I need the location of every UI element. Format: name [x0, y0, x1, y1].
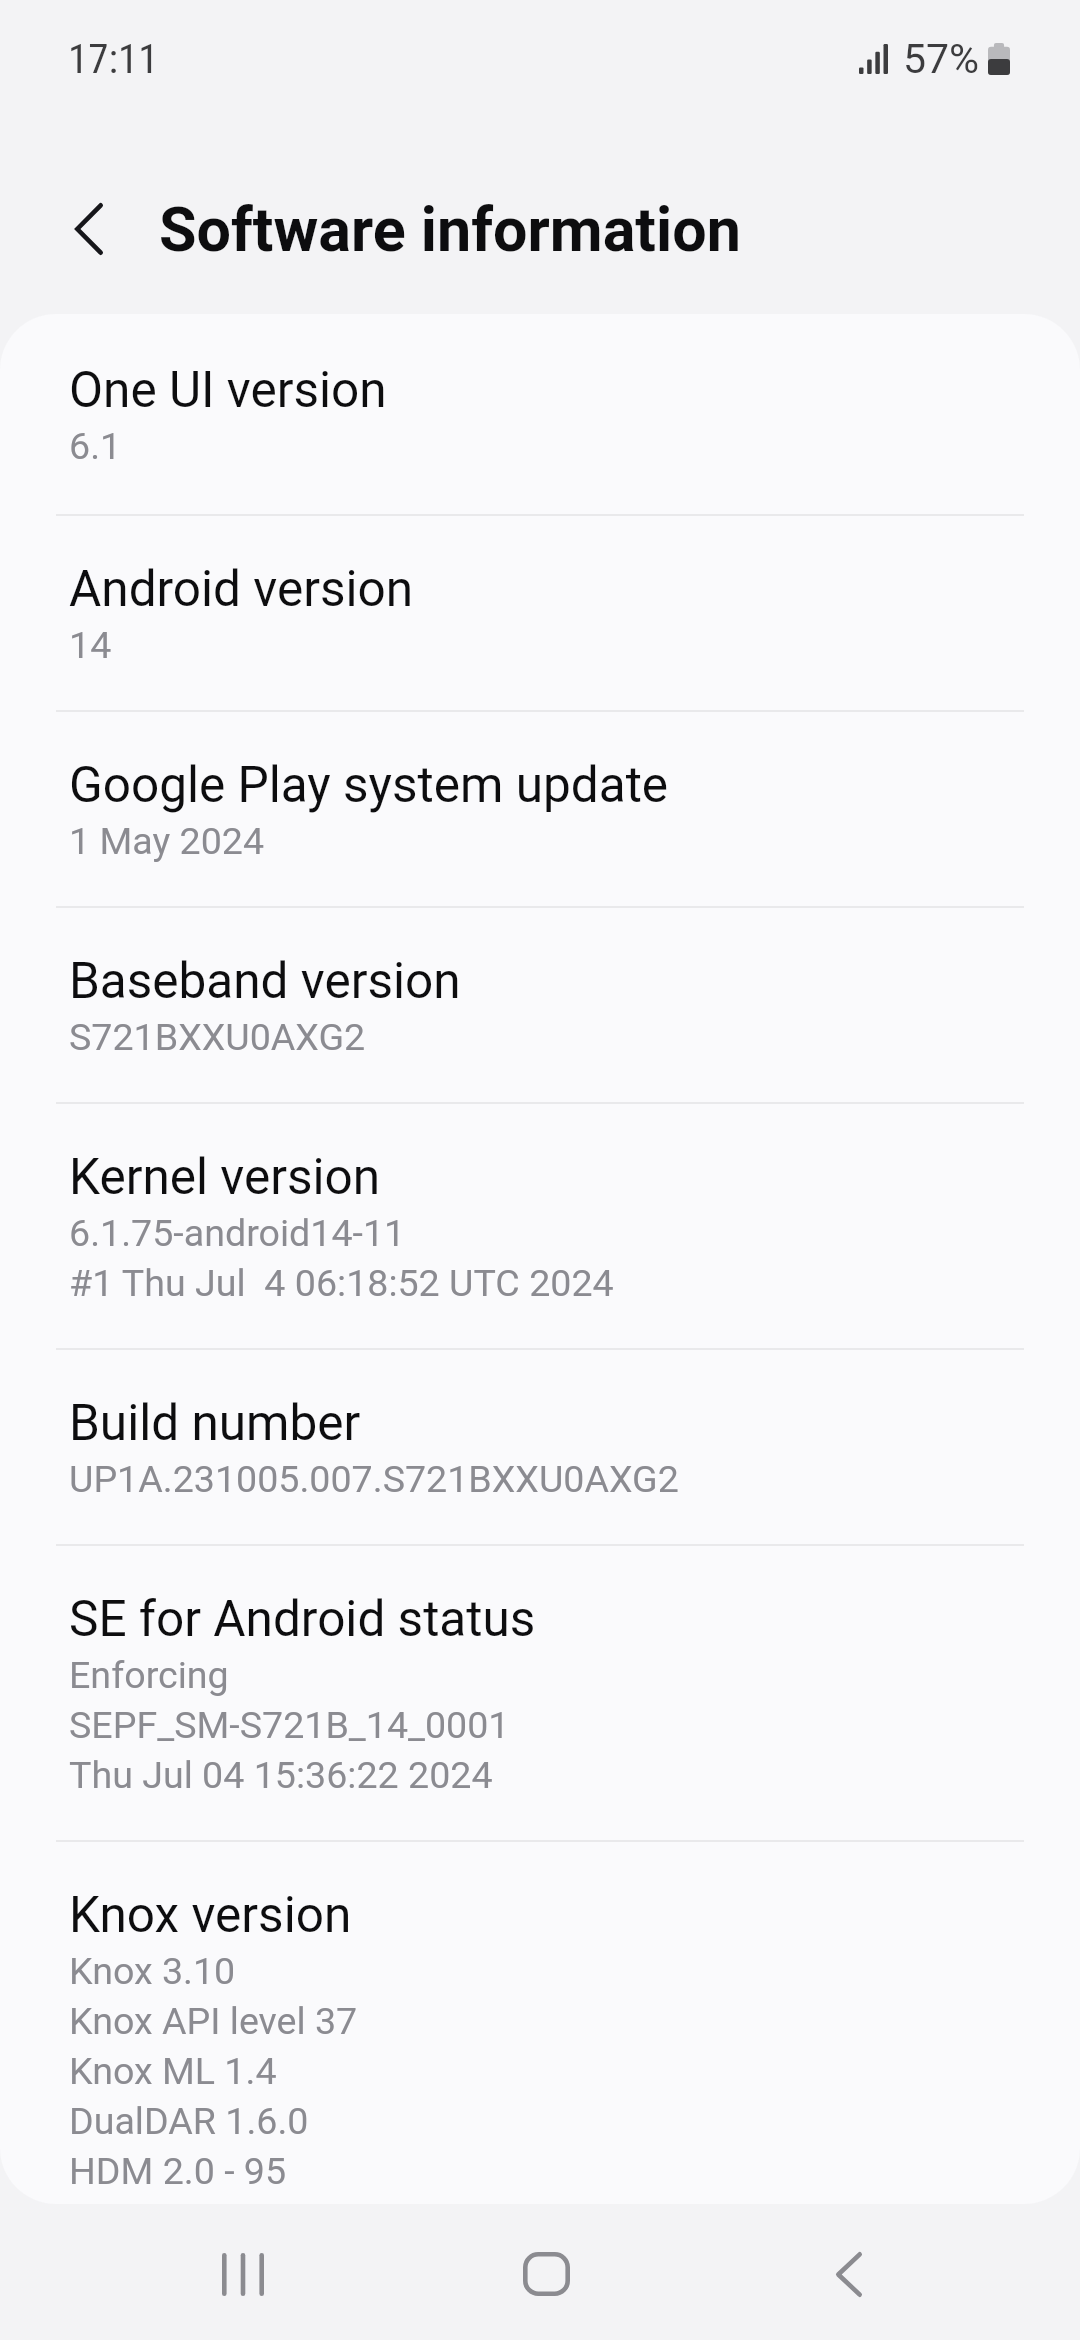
button[interactable]: Recent apps [183, 2214, 303, 2334]
staticText: HDM 2.0 - 95 [69, 2144, 287, 2194]
button[interactable]: SE for Android status [0, 1544, 1080, 1840]
button[interactable]: Kernel version [0, 1102, 1080, 1348]
staticText: Software information [159, 194, 741, 265]
staticText: S721BXXU0AXG2 [69, 1010, 366, 1060]
staticText: Knox ML 1.4 [69, 2044, 277, 2094]
staticText: Thu Jul 04 15:36:22 2024 [69, 1748, 493, 1798]
staticText: 6.1 [69, 419, 122, 469]
staticText: Knox version [69, 1886, 352, 1944]
staticText: Enforcing [69, 1648, 229, 1698]
staticText: Android version [69, 560, 414, 618]
staticText: UP1A.231005.007.S721BXXU0AXG2 [69, 1452, 679, 1502]
staticText: Knox 3.10 [69, 1944, 236, 1994]
staticText: Baseband version [69, 952, 461, 1010]
button[interactable]: Baseband version [0, 906, 1080, 1102]
button[interactable]: Back [789, 2214, 909, 2334]
staticText: DualDAR 1.6.0 [69, 2094, 309, 2144]
staticText: Build number [69, 1394, 361, 1452]
staticText: 1 May 2024 [69, 814, 265, 864]
button[interactable]: Android version [0, 514, 1080, 710]
staticText: #1 Thu Jul 4 06:18:52 UTC 2024 [69, 1256, 614, 1306]
button[interactable]: Build number [0, 1348, 1080, 1544]
button[interactable]: Navigate up [29, 169, 149, 289]
staticText: 6.1.75-android14-11 [69, 1206, 406, 1256]
staticText: SEPF_SM-S721B_14_0001 [69, 1698, 510, 1748]
staticText: Kernel version [69, 1148, 381, 1206]
button[interactable]: Home [486, 2214, 606, 2334]
button[interactable]: Knox version [0, 1840, 1080, 2204]
button[interactable]: Google Play system update [0, 710, 1080, 906]
staticText: Google Play system update [69, 756, 669, 814]
staticText: One UI version [69, 361, 387, 419]
button[interactable]: One UI version [0, 314, 1080, 514]
staticText: 17:11 [68, 35, 159, 83]
staticText: SE for Android status [69, 1590, 536, 1648]
staticText: 57% [903, 35, 980, 83]
staticText: Knox API level 37 [69, 1994, 358, 2044]
staticText: 14 [69, 618, 112, 668]
